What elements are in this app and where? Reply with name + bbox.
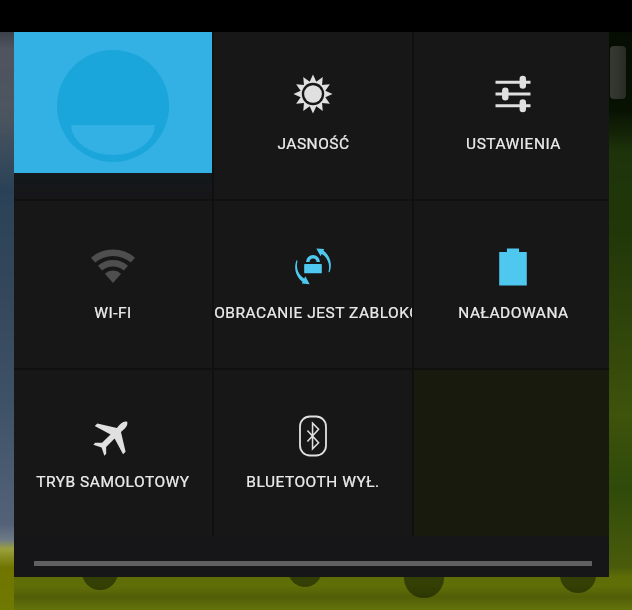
staticText: JASNOŚĆ [277, 135, 350, 153]
button[interactable]: Battery charged [414, 201, 609, 368]
staticText: BLUETOOTH WYŁ. [246, 473, 380, 491]
staticText: OBRACANIE JEST ZABLOKOWANE [214, 304, 412, 322]
staticText: USTAWIENIA [466, 135, 561, 153]
button[interactable]: Rotation locked [214, 201, 412, 368]
staticText: WI-FI [94, 304, 132, 322]
staticText: NAŁADOWANA [458, 304, 569, 322]
button[interactable]: Bluetooth off [214, 370, 412, 536]
button[interactable]: User profile [14, 32, 212, 199]
button[interactable]: Airplane mode [14, 370, 212, 536]
button[interactable]: Wi-Fi [14, 201, 212, 368]
button[interactable]: Settings [414, 32, 609, 199]
button[interactable]: Brightness [214, 32, 412, 199]
staticText: TRYB SAMOLOTOWY [36, 473, 190, 491]
